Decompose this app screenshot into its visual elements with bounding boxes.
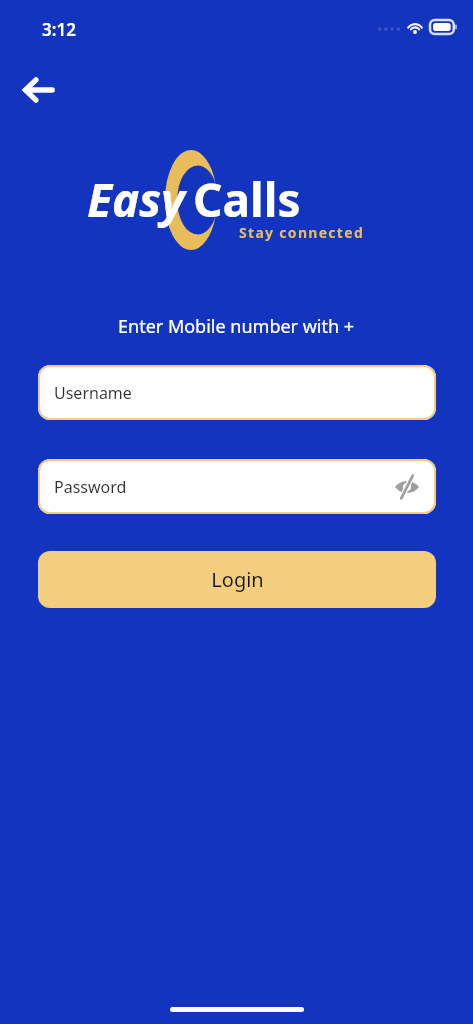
staticText: 3:12 [42, 18, 76, 41]
staticText: Calls [193, 168, 301, 231]
staticText: Login [211, 566, 264, 593]
staticText: Easy [87, 168, 185, 231]
button[interactable]: Back [14, 66, 62, 114]
button[interactable]: Show password [390, 470, 424, 504]
staticText: Password [54, 476, 127, 498]
staticText: Username [54, 382, 132, 404]
staticText: Stay connected [239, 223, 365, 242]
staticText: Enter Mobile number with + [118, 314, 355, 339]
button[interactable]: Login [38, 551, 436, 608]
button[interactable]: Password [38, 459, 436, 514]
button[interactable]: Username [38, 365, 436, 420]
